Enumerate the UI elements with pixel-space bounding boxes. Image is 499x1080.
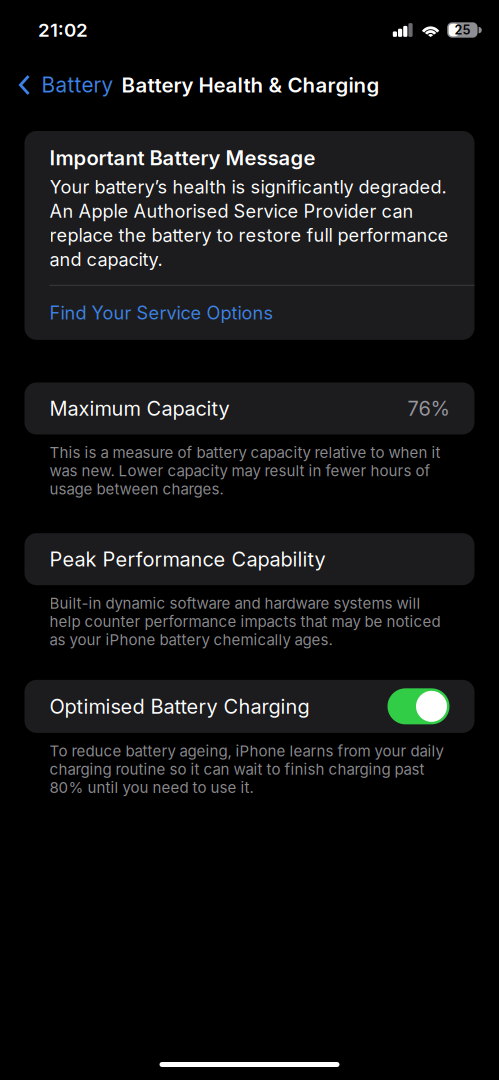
staticText: 76%: [407, 396, 449, 421]
staticText: Peak Performance Capability: [49, 547, 325, 571]
button[interactable]: Peak Performance Capability: [24, 533, 474, 585]
staticText: Maximum Capacity: [49, 396, 229, 421]
button[interactable]: Maximum Capacity: [24, 382, 474, 434]
staticText: Optimised Battery Charging: [49, 694, 309, 718]
staticText: Battery: [41, 72, 113, 98]
staticText: Find Your Service Options: [49, 302, 273, 324]
staticText: Battery Health & Charging: [121, 73, 379, 97]
staticText: Important Battery Message: [49, 145, 315, 170]
staticText: 25: [454, 22, 470, 38]
button[interactable]: Optimised Battery Charging: [24, 680, 474, 733]
staticText: Built-in dynamic software and hardware s…: [49, 594, 440, 649]
staticText: 21:02: [38, 19, 88, 41]
staticText: To reduce battery ageing, iPhone learns …: [49, 742, 443, 797]
button[interactable]: Find Your Service Options: [49, 286, 474, 340]
staticText: Your battery’s health is significantly d…: [49, 176, 448, 270]
button[interactable]: Battery: [0, 63, 121, 107]
staticText: This is a measure of battery capacity re…: [49, 443, 440, 498]
